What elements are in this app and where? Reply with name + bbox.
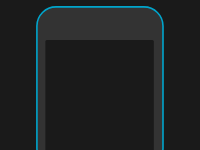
button[interactable]: Phone device preview: [0, 0, 200, 150]
